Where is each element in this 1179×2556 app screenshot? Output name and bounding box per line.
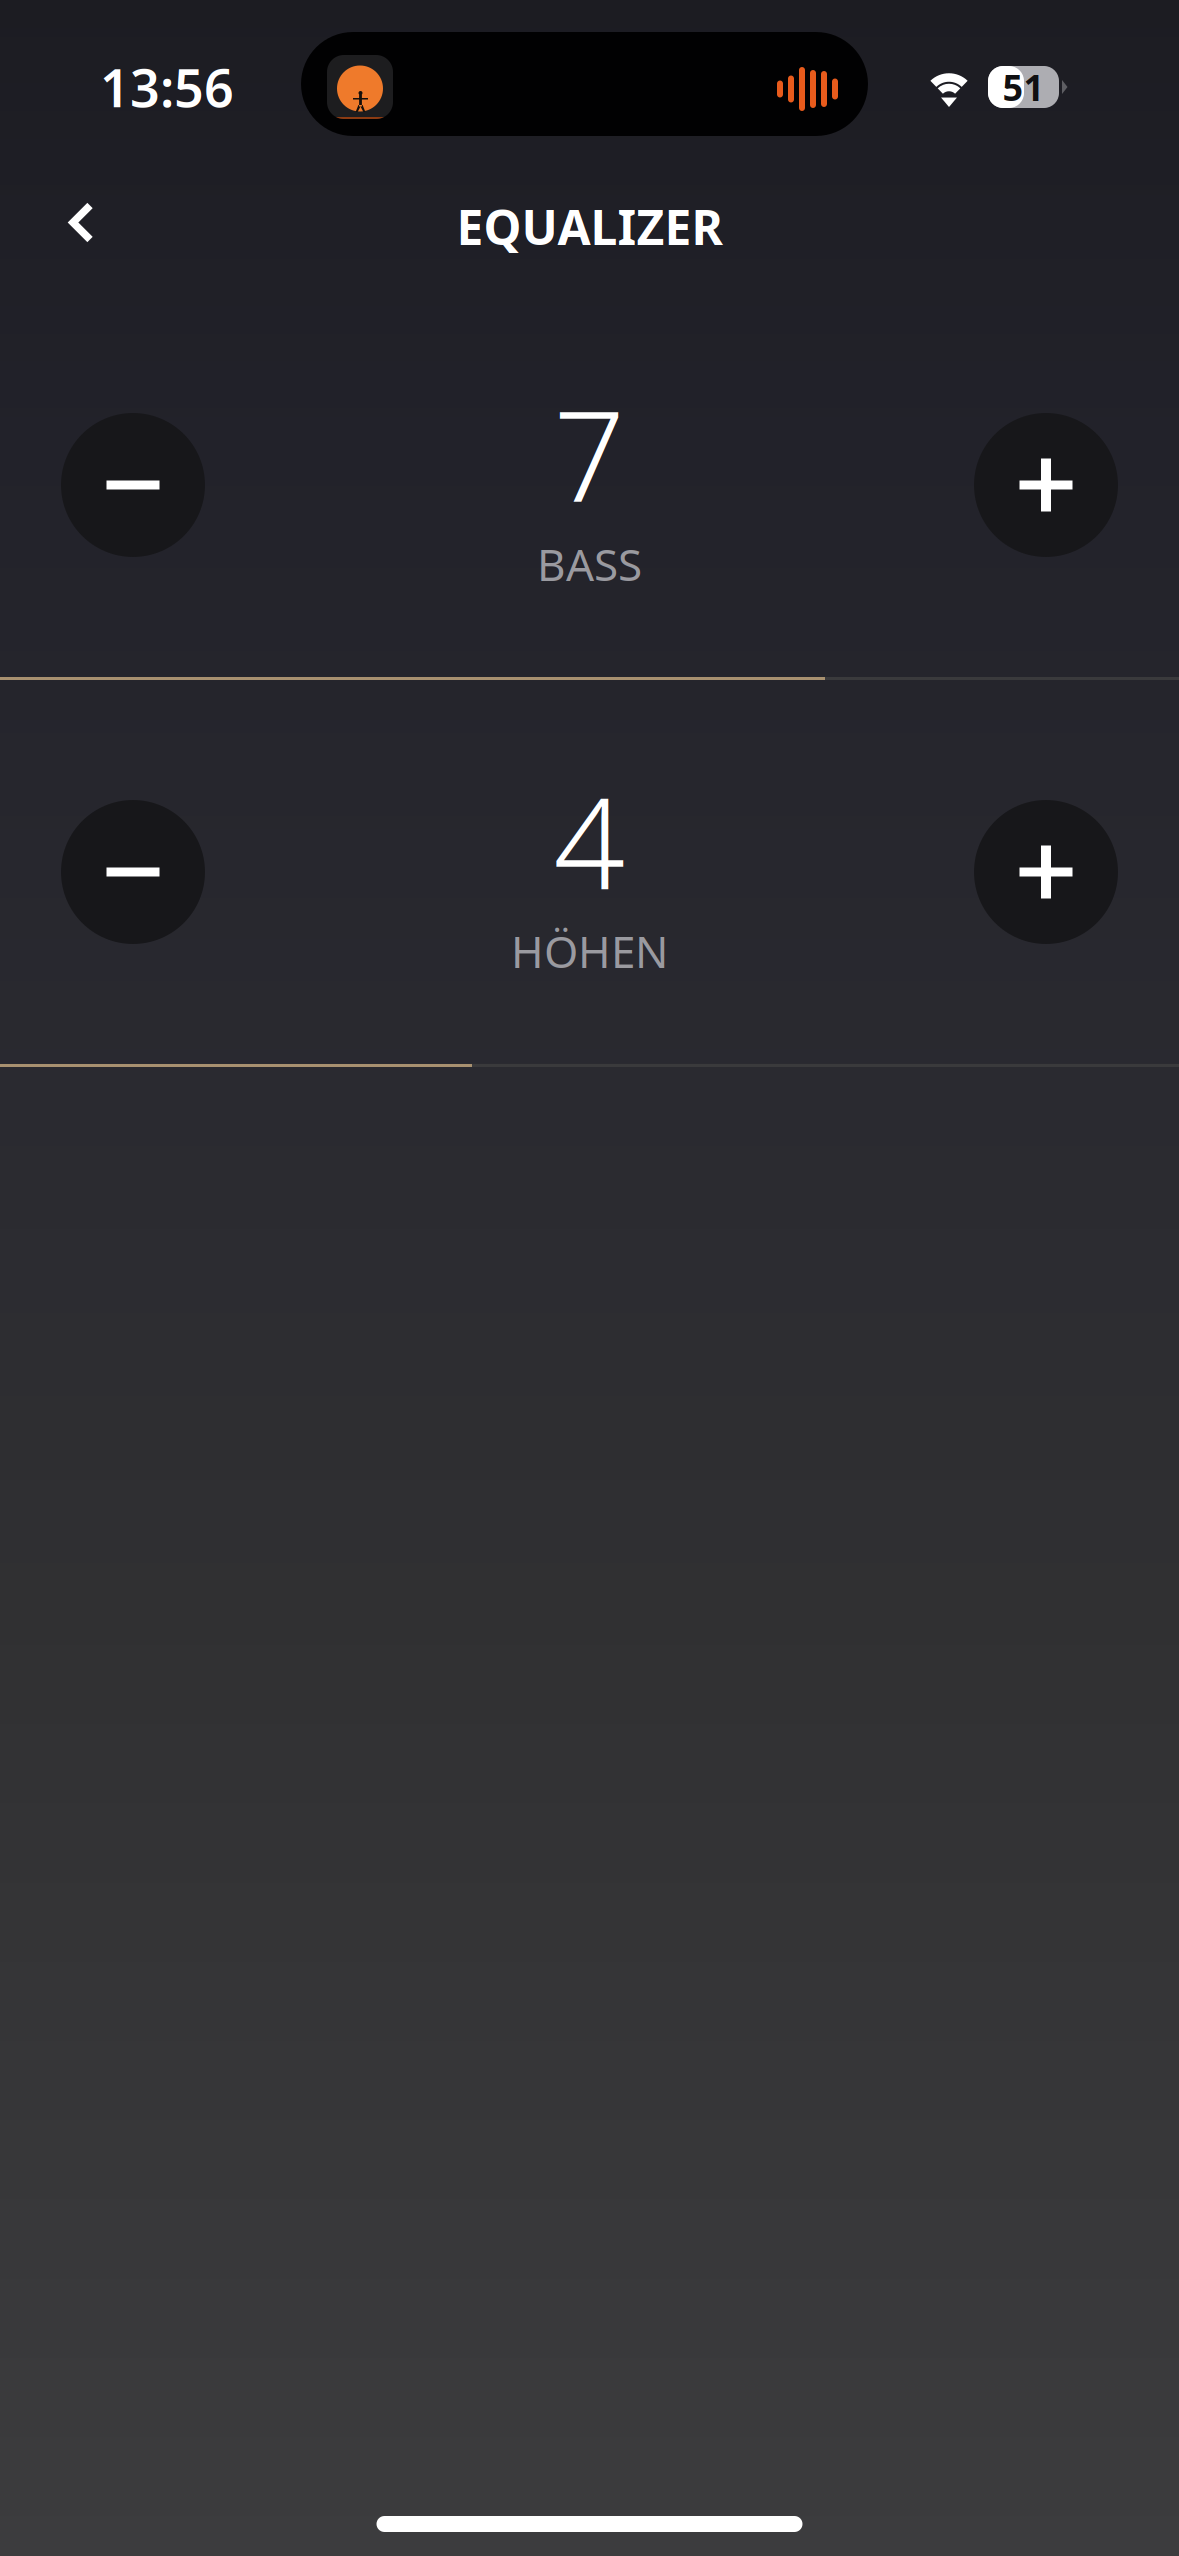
staticText: BASS [537, 535, 642, 593]
staticText: 13:56 [100, 52, 234, 122]
staticText: 4 [553, 757, 625, 923]
button[interactable]: Increase HÖHEN [974, 800, 1118, 944]
button[interactable]: Decrease HÖHEN [61, 800, 205, 944]
staticText: 51 [1002, 63, 1044, 111]
staticText: EQUALIZER [456, 195, 722, 258]
button[interactable]: Increase BASS [974, 413, 1118, 557]
staticText: HÖHEN [511, 922, 668, 980]
button[interactable]: Decrease BASS [61, 413, 205, 557]
staticText: 7 [553, 370, 625, 536]
button[interactable]: Back [0, 163, 138, 289]
